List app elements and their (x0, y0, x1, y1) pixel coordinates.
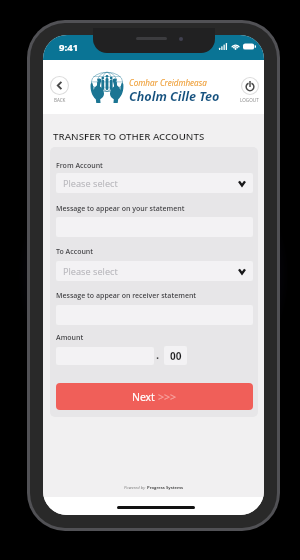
button[interactable]: Logout (240, 77, 259, 103)
staticText: >>> (158, 390, 177, 404)
staticText: LOGOUT (240, 97, 259, 103)
staticText: Message to appear on your statement (56, 204, 185, 214)
staticText: Next (132, 390, 158, 404)
staticText: 9:41 (59, 41, 79, 54)
staticText: TRANSFER TO OTHER ACCOUNTS (53, 130, 205, 143)
other: Logout (241, 77, 259, 95)
staticText: From Account (56, 161, 103, 171)
staticText: BACK (54, 97, 66, 103)
button[interactable]: Please select (56, 261, 253, 281)
staticText: Please select (63, 265, 118, 278)
staticText: Cholm Cille Teo (129, 88, 220, 105)
staticText: . (156, 347, 160, 362)
staticText: Progress Systems (147, 485, 184, 491)
staticText: Amount (56, 333, 84, 343)
button[interactable]: Next (56, 383, 253, 410)
staticText: Message to appear on receiver statement (56, 291, 197, 301)
other: Back (50, 76, 69, 95)
button[interactable]: Back (50, 76, 69, 103)
button[interactable]: Please select (56, 173, 253, 193)
staticText: 00 (170, 349, 182, 363)
staticText: To Account (56, 247, 94, 257)
staticText: Comhar Creidmheasa (129, 77, 207, 88)
staticText: Powered by (124, 485, 147, 491)
button[interactable]: 00 (164, 346, 187, 365)
staticText: Please select (63, 177, 118, 190)
